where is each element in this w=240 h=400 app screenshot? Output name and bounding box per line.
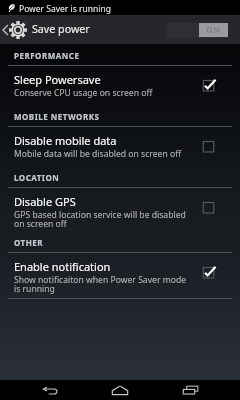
staticText: Show notificaiton when Power Saver mode …: [14, 274, 191, 295]
button[interactable]: Sleep Powersave: [0, 66, 240, 107]
button[interactable]: Recent apps: [160, 380, 220, 400]
staticText: Sleep Powersave: [14, 72, 101, 87]
button[interactable]: Enable notification: [0, 253, 240, 298]
staticText: Conserve CPU usage on screen off: [14, 87, 153, 99]
staticText: OTHER: [14, 237, 44, 248]
staticText: Enable notification: [14, 259, 111, 274]
button[interactable]: Save power: [0, 15, 240, 44]
staticText: GPS based location service will be disab…: [14, 209, 191, 230]
button[interactable]: Back: [20, 380, 80, 400]
staticText: Disable GPS: [14, 194, 76, 209]
staticText: ON: [206, 24, 221, 36]
staticText: Mobile data will be disabled on screen o…: [14, 148, 182, 160]
staticText: PERFORMANCE: [14, 50, 80, 61]
staticText: Save power: [32, 22, 90, 37]
button[interactable]: Power saver on: [167, 23, 228, 38]
staticText: Power Saver is running: [19, 3, 111, 15]
staticText: Disable mobile data: [14, 133, 117, 148]
button[interactable]: Home: [90, 380, 150, 400]
staticText: LOCATION: [14, 172, 60, 183]
staticText: MOBILE NETWORKS: [14, 111, 100, 122]
button[interactable]: Disable GPS: [0, 188, 240, 233]
button[interactable]: Disable mobile data: [0, 127, 240, 168]
